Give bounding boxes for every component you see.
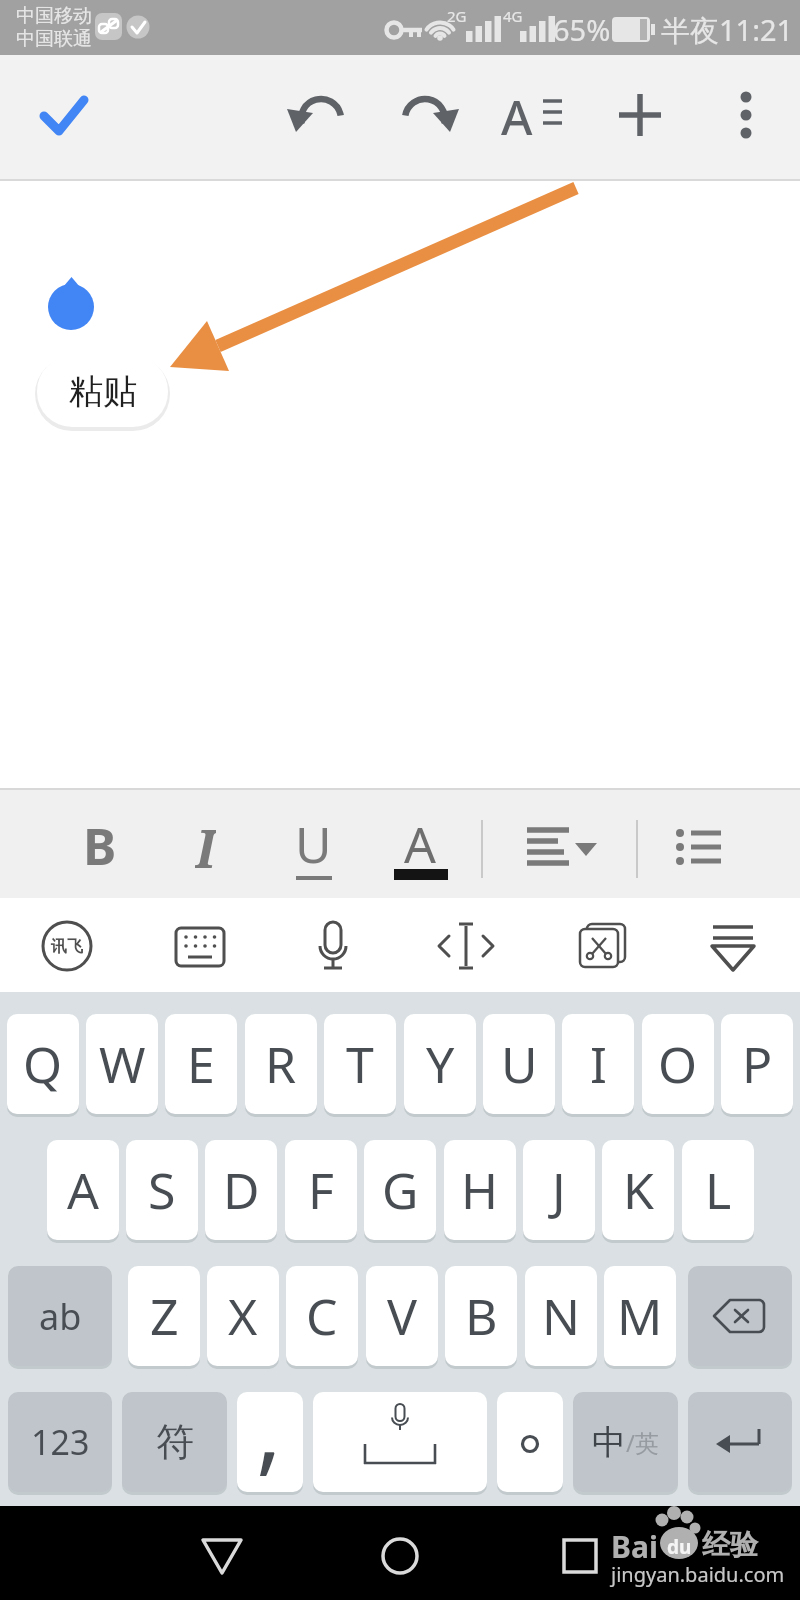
button[interactable]: U: [483, 1014, 555, 1114]
staticText: I: [195, 812, 216, 876]
button[interactable]: 符: [122, 1392, 227, 1492]
staticText: 中国联通: [16, 27, 92, 51]
button[interactable]: [538, 1516, 622, 1596]
button[interactable]: C: [286, 1266, 358, 1366]
staticText: Q: [23, 1030, 63, 1098]
button[interactable]: H: [444, 1140, 516, 1240]
button[interactable]: ab: [8, 1266, 112, 1366]
button[interactable]: T: [324, 1014, 396, 1114]
staticText: 符: [156, 1418, 194, 1466]
staticText: V: [387, 1282, 417, 1350]
staticText: X: [228, 1282, 258, 1350]
staticText: B: [83, 812, 117, 876]
button[interactable]: X: [207, 1266, 279, 1366]
staticText: G: [382, 1156, 419, 1224]
button[interactable]: [358, 1516, 442, 1596]
staticText: M: [617, 1282, 663, 1350]
button[interactable]: B: [70, 812, 130, 876]
staticText: W: [99, 1030, 146, 1098]
staticText: I: [590, 1030, 607, 1098]
staticText: C: [306, 1282, 338, 1350]
button[interactable]: W: [86, 1014, 158, 1114]
button[interactable]: N: [525, 1266, 597, 1366]
button[interactable]: [167, 912, 233, 980]
staticText: E: [187, 1030, 215, 1098]
staticText: A: [404, 810, 436, 872]
button[interactable]: [237, 1392, 303, 1492]
staticText: 中: [592, 1421, 626, 1464]
staticText: U: [501, 1030, 538, 1098]
staticText: J: [552, 1156, 566, 1224]
staticText: 讯飞: [51, 937, 83, 957]
button[interactable]: J: [523, 1140, 595, 1240]
staticText: 半夜11:21: [661, 10, 794, 48]
button[interactable]: [714, 85, 778, 149]
staticText: ab: [39, 1292, 82, 1341]
button[interactable]: [566, 912, 632, 980]
button[interactable]: P: [721, 1014, 793, 1114]
button[interactable]: [313, 1392, 487, 1492]
button[interactable]: F: [285, 1140, 357, 1240]
button[interactable]: [500, 815, 610, 879]
staticText: Y: [426, 1030, 455, 1098]
button[interactable]: [300, 912, 366, 980]
button[interactable]: [288, 85, 352, 149]
button[interactable]: A: [47, 1140, 119, 1240]
staticText: B: [465, 1282, 498, 1350]
button[interactable]: A: [390, 810, 450, 872]
button[interactable]: [433, 912, 499, 980]
staticText: jingyan.baidu.com: [611, 1561, 785, 1588]
staticText: 123: [31, 1419, 90, 1465]
staticText: ,: [256, 1360, 282, 1480]
button[interactable]: R: [245, 1014, 317, 1114]
button[interactable]: [30, 85, 94, 149]
button[interactable]: K: [602, 1140, 674, 1240]
button[interactable]: G: [364, 1140, 436, 1240]
staticText: L: [705, 1156, 732, 1224]
staticText: A: [501, 84, 533, 146]
button[interactable]: O: [642, 1014, 714, 1114]
button[interactable]: M: [604, 1266, 676, 1366]
button[interactable]: E: [165, 1014, 237, 1114]
button[interactable]: [395, 85, 459, 149]
button[interactable]: I: [175, 812, 235, 876]
button[interactable]: [573, 1392, 678, 1492]
staticText: T: [346, 1030, 374, 1098]
button[interactable]: [688, 1266, 792, 1366]
staticText: /英: [626, 1426, 659, 1459]
staticText: U: [295, 810, 332, 872]
button[interactable]: B: [445, 1266, 517, 1366]
staticText: S: [148, 1156, 176, 1224]
button[interactable]: D: [205, 1140, 277, 1240]
button[interactable]: [34, 912, 100, 980]
staticText: 65%: [553, 10, 611, 48]
button[interactable]: I: [562, 1014, 634, 1114]
staticText: 2G: [447, 6, 467, 24]
button[interactable]: [699, 912, 765, 980]
button[interactable]: [660, 815, 740, 879]
button[interactable]: [180, 1516, 264, 1596]
button[interactable]: [497, 1392, 563, 1492]
staticText: du: [667, 1534, 692, 1558]
staticText: F: [308, 1156, 334, 1224]
button[interactable]: [608, 85, 672, 149]
staticText: 4G: [503, 6, 523, 24]
staticText: 中国移动: [16, 4, 92, 28]
button[interactable]: U: [283, 810, 343, 872]
button[interactable]: 粘贴: [37, 356, 168, 427]
button[interactable]: Q: [7, 1014, 79, 1114]
staticText: 经验: [702, 1527, 758, 1562]
button[interactable]: [688, 1392, 792, 1492]
button[interactable]: Z: [128, 1266, 200, 1366]
staticText: P: [742, 1030, 773, 1098]
button[interactable]: 123: [8, 1392, 112, 1492]
staticText: 粘贴: [69, 370, 137, 413]
staticText: R: [265, 1030, 297, 1098]
staticText: N: [542, 1282, 580, 1350]
button[interactable]: S: [126, 1140, 198, 1240]
button[interactable]: V: [366, 1266, 438, 1366]
button[interactable]: Y: [404, 1014, 476, 1114]
button[interactable]: L: [682, 1140, 754, 1240]
staticText: H: [461, 1156, 499, 1224]
button[interactable]: [500, 85, 564, 149]
